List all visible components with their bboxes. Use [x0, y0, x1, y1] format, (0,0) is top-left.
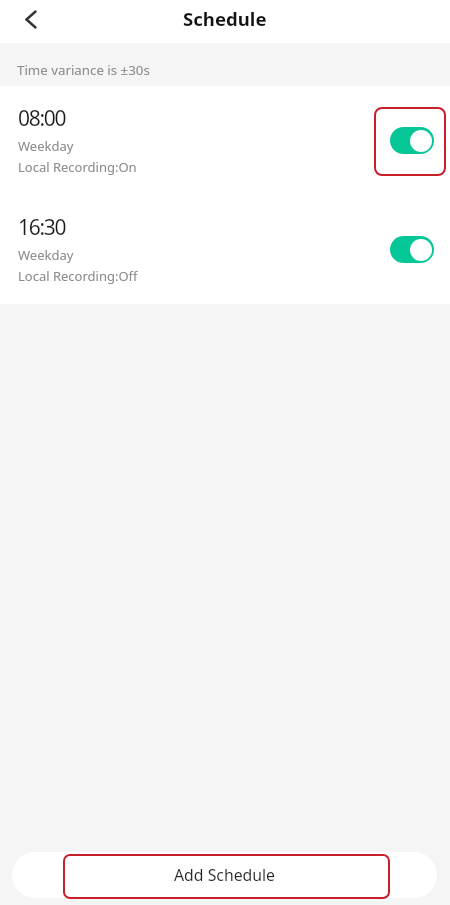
- staticText: Schedule: [183, 6, 267, 31]
- staticText: Local Recording:Off: [18, 267, 138, 285]
- button[interactable]: Enable 16:30 schedule: [390, 236, 434, 263]
- staticText: Weekday: [18, 137, 74, 155]
- staticText: Weekday: [18, 246, 74, 264]
- button[interactable]: Enable 08:00 schedule: [390, 127, 434, 154]
- button[interactable]: 08:00: [0, 86, 450, 195]
- staticText: Local Recording:On: [18, 158, 137, 176]
- staticText: 08:00: [18, 104, 66, 133]
- staticText: Add Schedule: [174, 864, 276, 886]
- staticText: 16:30: [18, 213, 66, 242]
- staticText: Time variance is ±30s: [17, 61, 150, 79]
- button[interactable]: Add Schedule: [12, 852, 437, 898]
- button[interactable]: Back: [15, 6, 47, 38]
- button[interactable]: 16:30: [0, 195, 450, 304]
